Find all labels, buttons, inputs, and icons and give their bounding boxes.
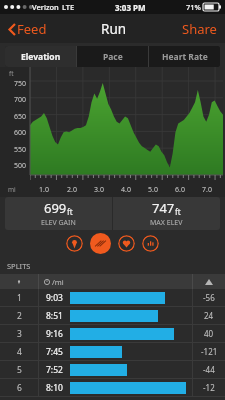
staticText: /mi <box>52 277 64 287</box>
staticText: -121 <box>201 346 218 357</box>
staticText: 2 <box>17 310 22 322</box>
staticText: 71% <box>186 2 201 12</box>
staticText: ft <box>175 206 181 217</box>
staticText: Feed <box>17 20 47 38</box>
staticText: SPLITS <box>7 261 31 271</box>
staticText: ELEV GAIN <box>41 218 76 228</box>
button[interactable]: Elevation <box>5 46 76 67</box>
staticText: 3 <box>17 328 22 340</box>
staticText: Elevation <box>21 51 61 63</box>
button[interactable]: 699 <box>5 197 112 230</box>
staticText: -12 <box>203 382 215 393</box>
staticText: 500 <box>14 161 27 171</box>
staticText: 6 <box>17 382 22 394</box>
staticText: Run <box>101 20 127 38</box>
button[interactable]: Heart Rate <box>118 235 135 252</box>
staticText: 6.0 <box>175 185 185 195</box>
button[interactable]: Feed <box>6 17 49 41</box>
staticText: 550 <box>14 145 27 155</box>
staticText: 1.0 <box>39 185 49 195</box>
staticText: 4 <box>17 346 22 358</box>
button[interactable]: 747 <box>113 197 220 230</box>
staticText: ft <box>67 206 73 217</box>
staticText: 700 <box>14 95 27 105</box>
staticText: 7.0 <box>202 185 212 195</box>
button[interactable]: Heart Rate <box>149 46 220 67</box>
staticText: mi <box>8 185 16 194</box>
staticText: 7:45 <box>46 346 63 358</box>
button[interactable]: 4 <box>0 343 225 360</box>
staticText: Verizon <box>32 2 59 12</box>
staticText: 650 <box>14 112 27 122</box>
staticText: 8:51 <box>46 310 63 322</box>
staticText: -56 <box>203 292 215 303</box>
staticText: 1 <box>17 292 22 304</box>
staticText: 8:10 <box>46 382 63 394</box>
staticText: ft <box>9 69 14 78</box>
button[interactable]: Share <box>180 17 219 41</box>
staticText: Heart Rate <box>162 51 208 63</box>
staticText: 4.0 <box>121 185 131 195</box>
button[interactable]: Map <box>66 235 83 252</box>
staticText: 600 <box>14 128 27 138</box>
staticText: 3.0 <box>94 185 104 195</box>
staticText: 7:52 <box>46 364 63 376</box>
staticText: 5.0 <box>148 185 158 195</box>
staticText: MAX ELEV <box>150 218 183 228</box>
button[interactable]: 5 <box>0 361 225 378</box>
staticText: 5 <box>17 364 22 376</box>
staticText: 3:03 PM <box>115 2 146 13</box>
button[interactable]: 3 <box>0 325 225 342</box>
staticText: 24 <box>204 310 214 321</box>
staticText: 747 <box>152 199 175 217</box>
staticText: Share <box>182 20 217 38</box>
staticText: 9:16 <box>46 328 63 340</box>
staticText: -44 <box>203 364 215 375</box>
button[interactable]: Run <box>90 233 111 254</box>
staticText: 9:03 <box>46 292 63 304</box>
button[interactable]: 6 <box>0 379 225 396</box>
button[interactable]: 2 <box>0 307 225 324</box>
staticText: 699 <box>44 199 67 217</box>
button[interactable]: Splits <box>142 235 159 252</box>
staticText: 2.0 <box>67 185 77 195</box>
staticText: 750 <box>14 79 27 89</box>
staticText: 40 <box>204 328 214 339</box>
button[interactable]: 1 <box>0 289 225 306</box>
button[interactable]: Pace <box>77 46 148 67</box>
staticText: Pace <box>103 51 123 63</box>
staticText: LTE <box>62 2 75 12</box>
